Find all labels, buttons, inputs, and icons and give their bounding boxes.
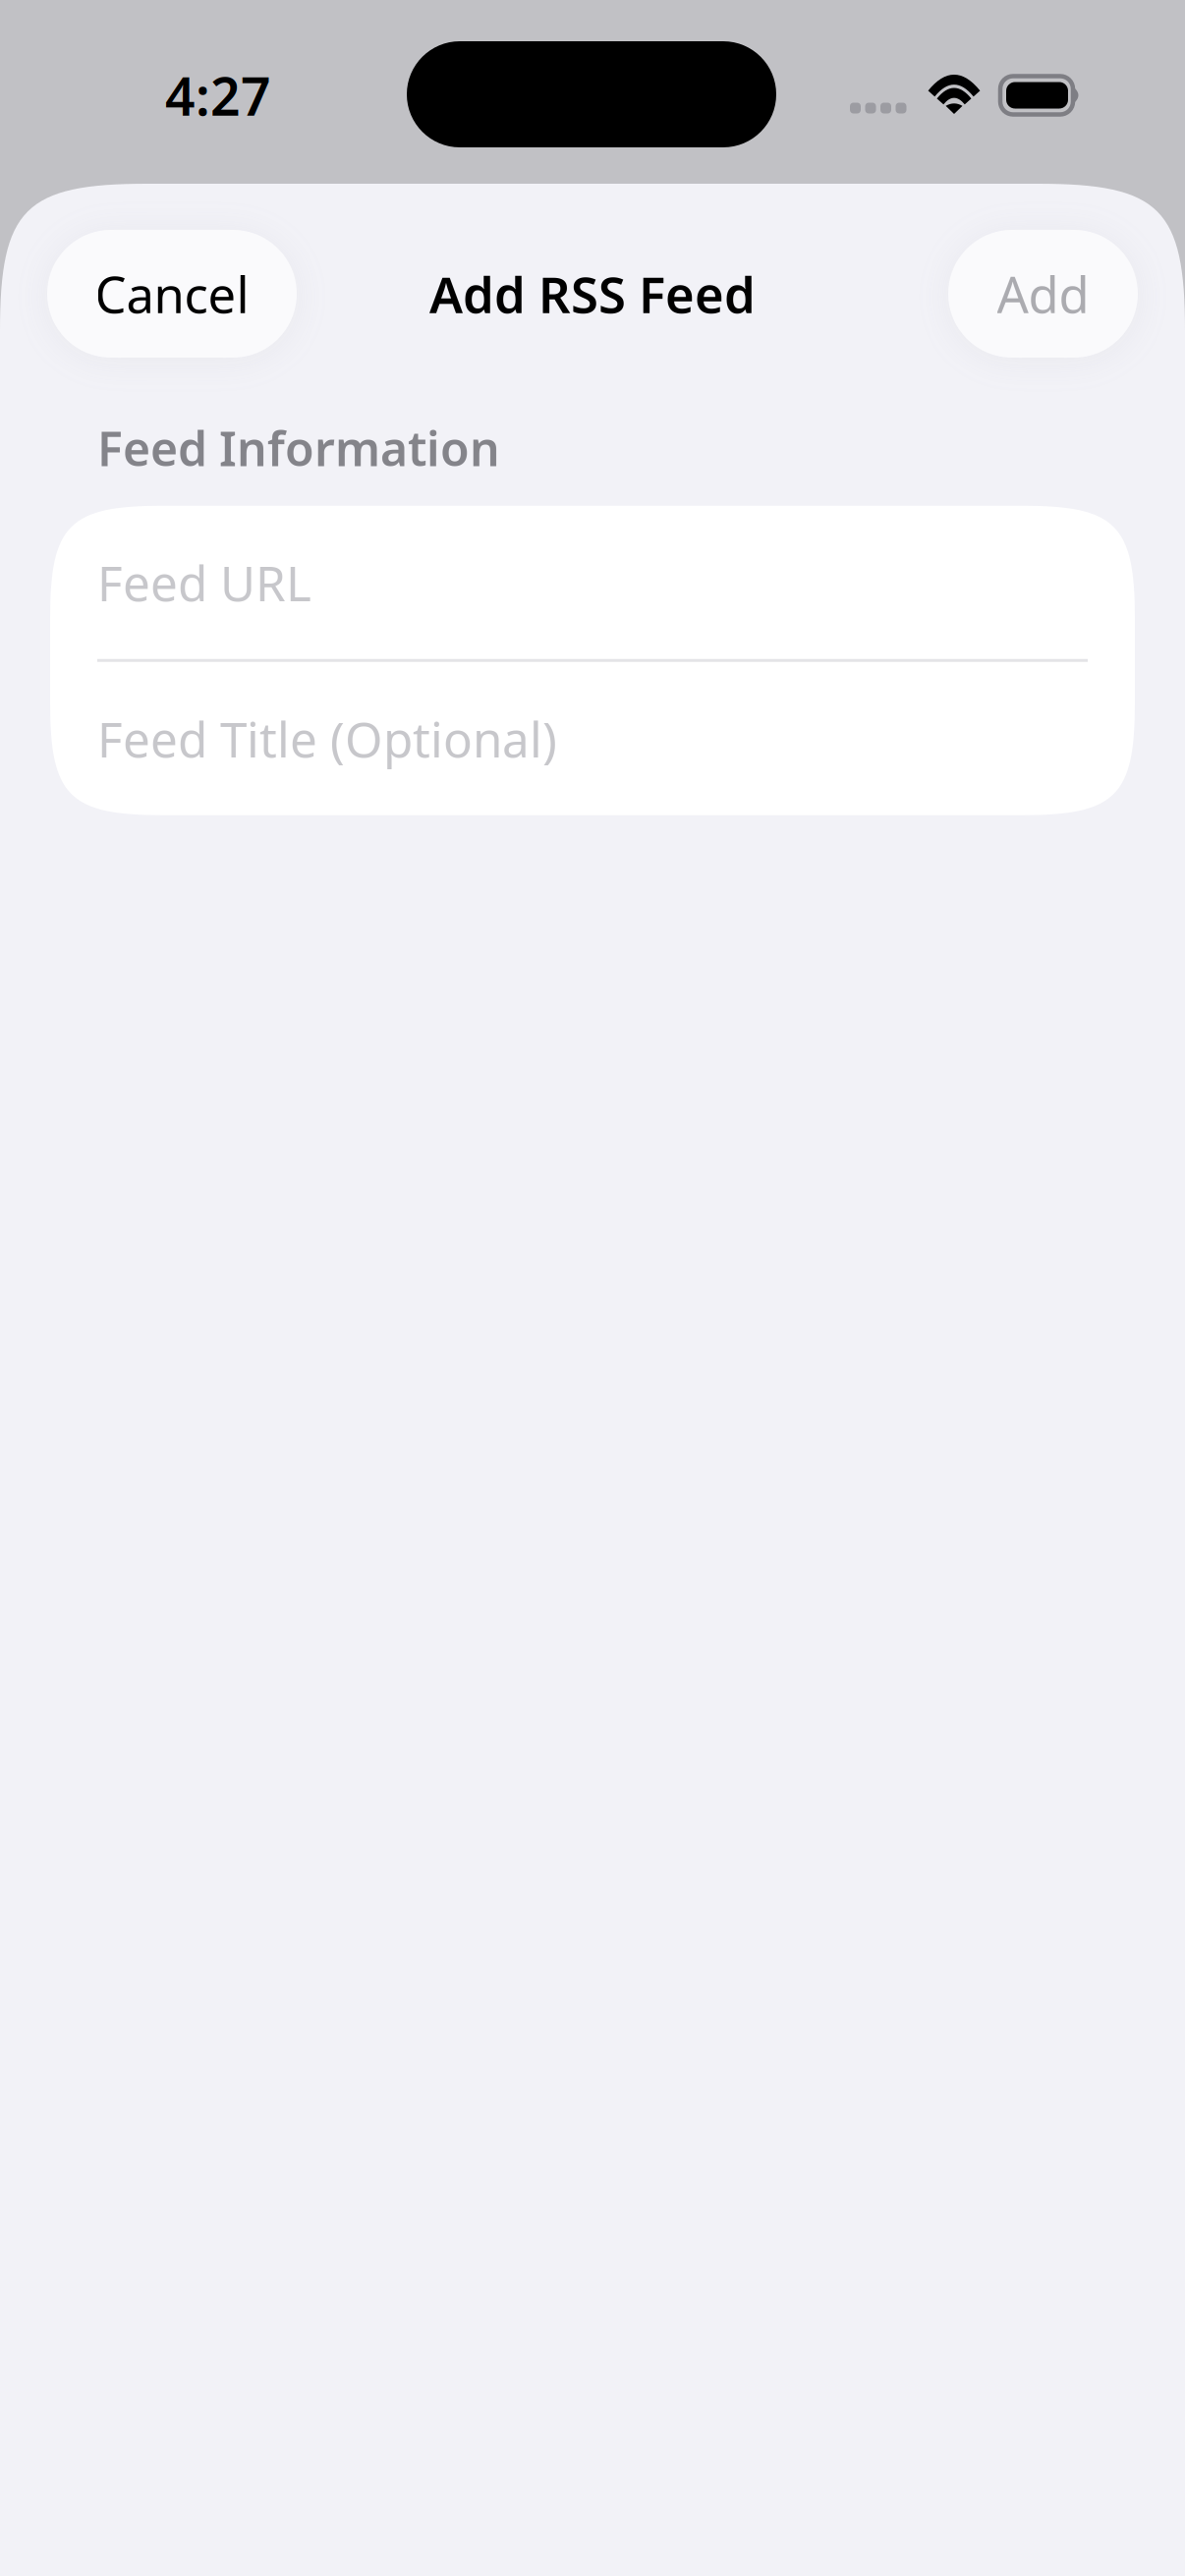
staticText: Feed Information (97, 417, 500, 479)
button[interactable]: Feed URL (50, 506, 1135, 659)
staticText: 4:27 (165, 61, 271, 130)
staticText: Feed URL (97, 550, 311, 615)
button[interactable]: Feed Title (Optional) (50, 662, 1135, 815)
staticText: Add (997, 261, 1089, 327)
button[interactable]: Cancel (47, 230, 297, 358)
button[interactable]: Add (948, 230, 1138, 358)
staticText: Feed Title (Optional) (97, 706, 557, 771)
staticText: Add RSS Feed (429, 261, 756, 327)
staticText: Cancel (95, 261, 249, 327)
